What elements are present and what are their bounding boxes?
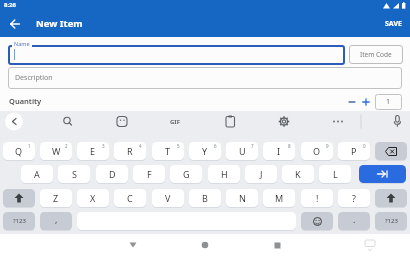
staticText: I (277, 145, 281, 157)
button[interactable] (122, 234, 144, 256)
staticText: 7 (251, 143, 254, 149)
button[interactable]: Item Code (349, 45, 403, 64)
button[interactable]: F (133, 165, 165, 183)
button[interactable] (359, 95, 373, 109)
staticText: ?123 (385, 217, 398, 225)
button[interactable]: P (338, 142, 370, 160)
staticText: F (147, 168, 152, 180)
staticText: 6 (214, 143, 217, 149)
button[interactable]: M (263, 189, 295, 207)
staticText: E (90, 145, 96, 157)
staticText: Item Code (360, 50, 392, 59)
button[interactable] (301, 212, 333, 230)
staticText: 0 (363, 143, 366, 149)
staticText: 5 (177, 143, 180, 149)
staticText: U (239, 145, 246, 157)
button[interactable] (375, 189, 407, 207)
button[interactable]: S (58, 165, 90, 183)
button[interactable]: D (96, 165, 128, 183)
staticText: ? (352, 192, 356, 204)
staticText: New Item (36, 17, 83, 30)
button[interactable]: N (226, 189, 258, 207)
staticText: D (109, 168, 116, 180)
button[interactable] (359, 165, 406, 183)
button[interactable]: T (152, 142, 184, 160)
staticText: 2 (65, 143, 68, 149)
button[interactable]: O (301, 142, 333, 160)
staticText: A (34, 168, 40, 180)
button[interactable]: K (282, 165, 314, 183)
staticText: T (165, 145, 171, 157)
button[interactable]: Y (189, 142, 221, 160)
button[interactable] (3, 189, 35, 207)
staticText: 4 (139, 143, 142, 149)
button[interactable]: W (40, 142, 72, 160)
button[interactable]: ! (301, 189, 333, 207)
staticText: SAVE (385, 19, 402, 29)
staticText: P (351, 145, 357, 157)
button[interactable] (194, 234, 216, 256)
staticText: ! (316, 192, 319, 204)
button[interactable]: B (189, 189, 221, 207)
staticText: 9 (326, 143, 329, 149)
staticText: N (239, 192, 246, 204)
staticText: GIF (170, 118, 180, 126)
button[interactable]: E (77, 142, 109, 160)
staticText: 1 (386, 97, 391, 107)
button[interactable]: ?123 (3, 212, 35, 230)
button[interactable]: R (114, 142, 146, 160)
button[interactable]: , (40, 212, 72, 230)
button[interactable]: G (170, 165, 202, 183)
staticText: J (260, 168, 263, 180)
staticText: L (333, 168, 338, 180)
button[interactable]: U (226, 142, 258, 160)
staticText: C (127, 192, 133, 204)
staticText: Quantity (9, 96, 42, 106)
button[interactable]: X (77, 189, 109, 207)
button[interactable]: A (21, 165, 53, 183)
staticText: Z (53, 192, 59, 204)
staticText: B (202, 192, 208, 204)
staticText: 1 (28, 143, 31, 149)
staticText: S (72, 168, 77, 180)
staticText: K (295, 168, 301, 180)
staticText: G (183, 168, 190, 180)
button[interactable] (266, 234, 288, 256)
staticText: X (90, 192, 96, 204)
staticText: 8:26 (4, 1, 16, 9)
button[interactable]: H (208, 165, 240, 183)
staticText: ?123 (13, 217, 26, 225)
staticText: O (313, 145, 321, 157)
button[interactable] (375, 142, 407, 160)
staticText: W (52, 145, 61, 157)
button[interactable] (4, 13, 26, 35)
button[interactable]: Q (3, 142, 35, 160)
staticText: Y (202, 145, 208, 157)
button[interactable]: I (263, 142, 295, 160)
staticText: V (165, 192, 171, 204)
staticText: R (127, 145, 133, 157)
staticText: Description (15, 73, 53, 83)
staticText: 3 (102, 143, 105, 149)
button[interactable]: 1 (375, 94, 402, 110)
button[interactable]: L (319, 165, 351, 183)
button[interactable]: V (152, 189, 184, 207)
button[interactable]: . (338, 212, 370, 230)
button[interactable]: ? (338, 189, 370, 207)
staticText: H (221, 168, 228, 180)
button[interactable]: Description (8, 67, 402, 89)
button[interactable] (345, 95, 359, 109)
button[interactable] (8, 45, 345, 65)
button[interactable]: J (245, 165, 277, 183)
staticText: M (275, 192, 284, 204)
staticText: . (353, 213, 356, 225)
staticText: 8 (288, 143, 291, 149)
button[interactable]: ?123 (375, 212, 407, 230)
button[interactable]: Z (40, 189, 72, 207)
staticText: Name (14, 40, 30, 47)
button[interactable]: SAVE (385, 19, 402, 29)
staticText: , (55, 213, 58, 225)
button[interactable]: C (114, 189, 146, 207)
staticText: Q (15, 145, 23, 157)
